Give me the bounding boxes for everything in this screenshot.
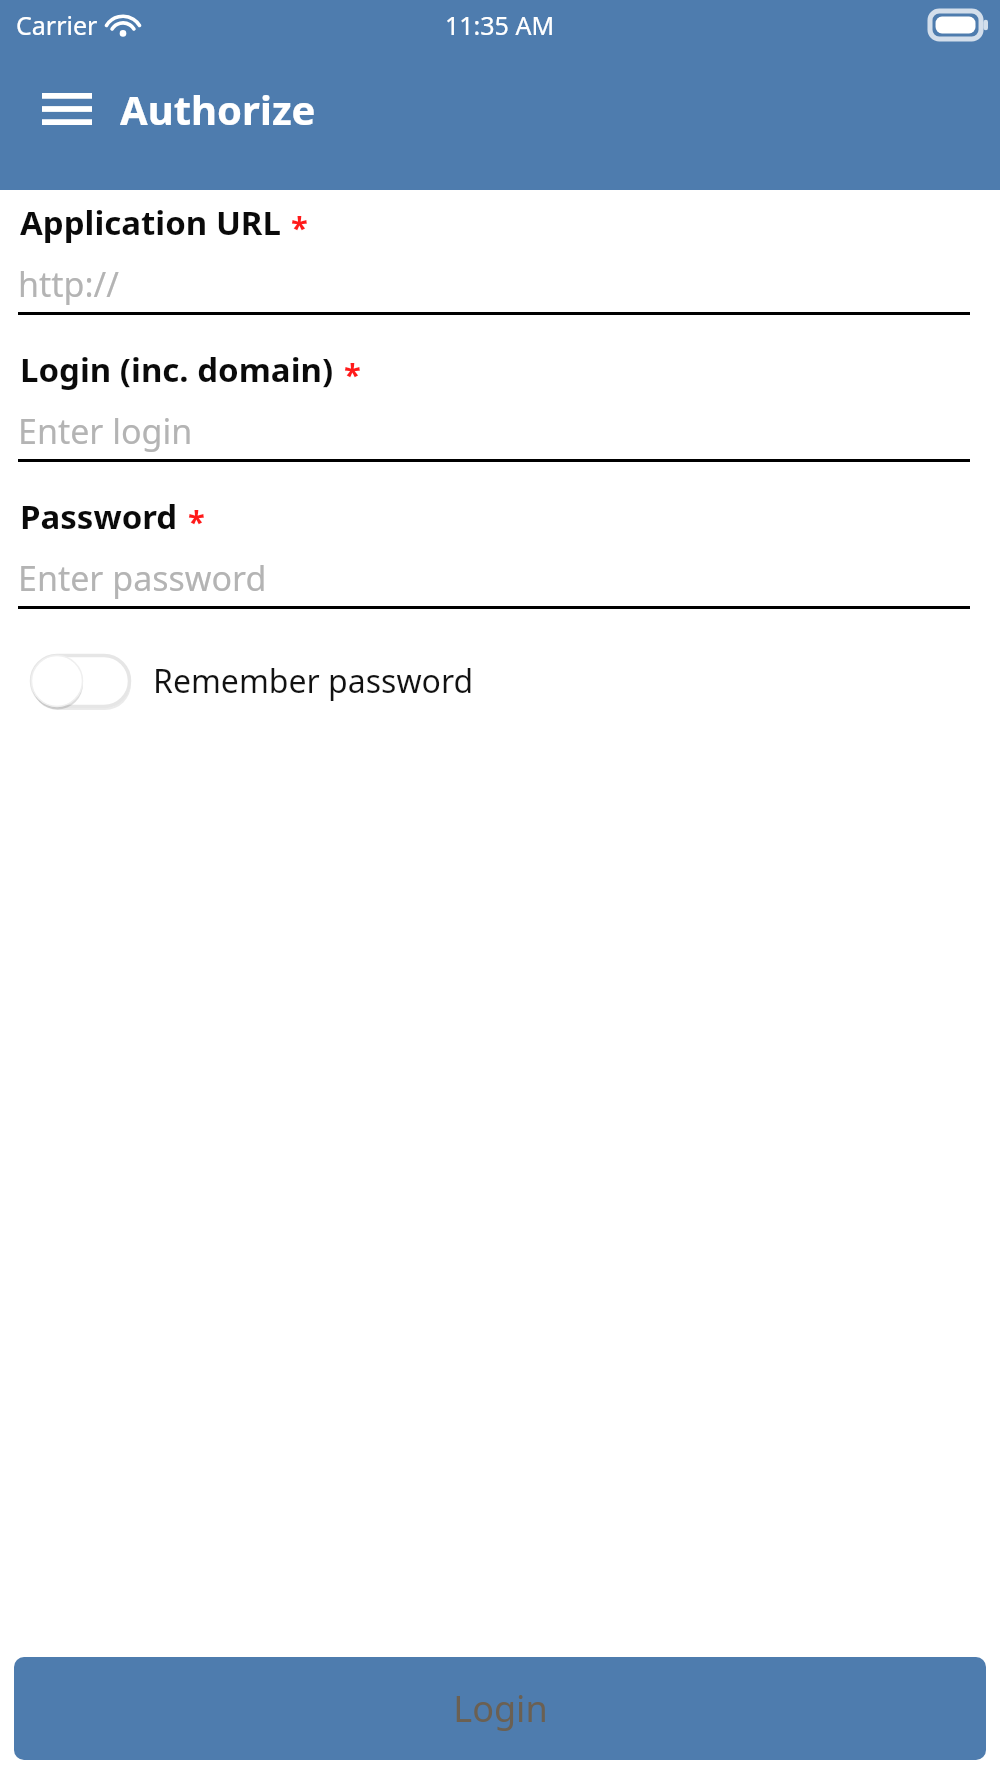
staticText: Enter password — [18, 555, 267, 601]
staticText: Enter login — [18, 408, 193, 454]
staticText: 11:35 AM — [445, 8, 555, 42]
staticText: http:// — [18, 261, 119, 307]
staticText: * — [291, 206, 308, 248]
button[interactable]: Enter password — [18, 555, 970, 609]
button[interactable]: Menu — [40, 87, 94, 131]
staticText: * — [188, 500, 205, 542]
staticText: Authorize — [120, 82, 316, 136]
staticText: Login — [453, 1684, 548, 1733]
button[interactable]: http:// — [18, 261, 970, 315]
button[interactable] — [30, 654, 131, 708]
staticText: Login (inc. domain) — [20, 347, 334, 392]
staticText: * — [344, 353, 361, 395]
button[interactable]: Enter login — [18, 408, 970, 462]
staticText: Carrier — [16, 8, 98, 42]
staticText: Password — [20, 494, 178, 539]
button[interactable]: Login — [14, 1657, 986, 1760]
button[interactable]: Remember password — [30, 654, 980, 708]
staticText: Application URL — [20, 200, 281, 245]
staticText: Remember password — [153, 659, 474, 703]
